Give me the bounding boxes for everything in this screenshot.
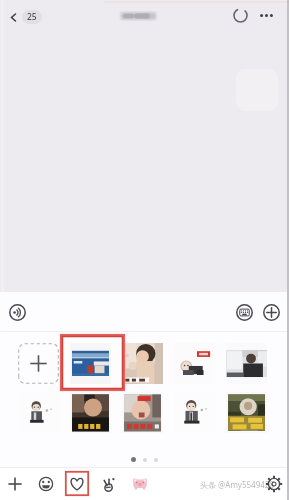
button[interactable]: Sticker (19, 392, 60, 433)
button[interactable]: Sticker (122, 392, 163, 433)
button[interactable]: Add sticker (18, 343, 59, 384)
button[interactable]: Sticker (70, 392, 111, 433)
button[interactable]: Voice message (9, 304, 26, 321)
button[interactable]: Sticker (122, 343, 163, 384)
button[interactable]: Keyboard (236, 304, 253, 321)
button[interactable]: More options (257, 6, 276, 25)
button[interactable]: Sticker (226, 343, 267, 384)
button[interactable]: Hand sticker pack (99, 474, 119, 494)
button[interactable]: Pig sticker pack (130, 474, 150, 494)
button[interactable]: More functions (263, 304, 280, 321)
button[interactable]: Settings (264, 474, 284, 494)
button[interactable]: Favourite stickers (67, 474, 87, 494)
button[interactable]: Sticker (174, 343, 215, 384)
staticText: 25 (27, 11, 37, 23)
button[interactable]: Sticker (226, 392, 267, 433)
button[interactable]: Sticker (70, 343, 111, 384)
staticText: 头条 @Amy5549428 (200, 479, 274, 490)
button[interactable]: Sticker (174, 392, 215, 433)
button[interactable]: Back, 25 unread (6, 7, 44, 27)
button[interactable]: Loading (231, 6, 250, 25)
button[interactable]: Add sticker pack (5, 474, 25, 494)
button[interactable]: Emoji (36, 474, 56, 494)
